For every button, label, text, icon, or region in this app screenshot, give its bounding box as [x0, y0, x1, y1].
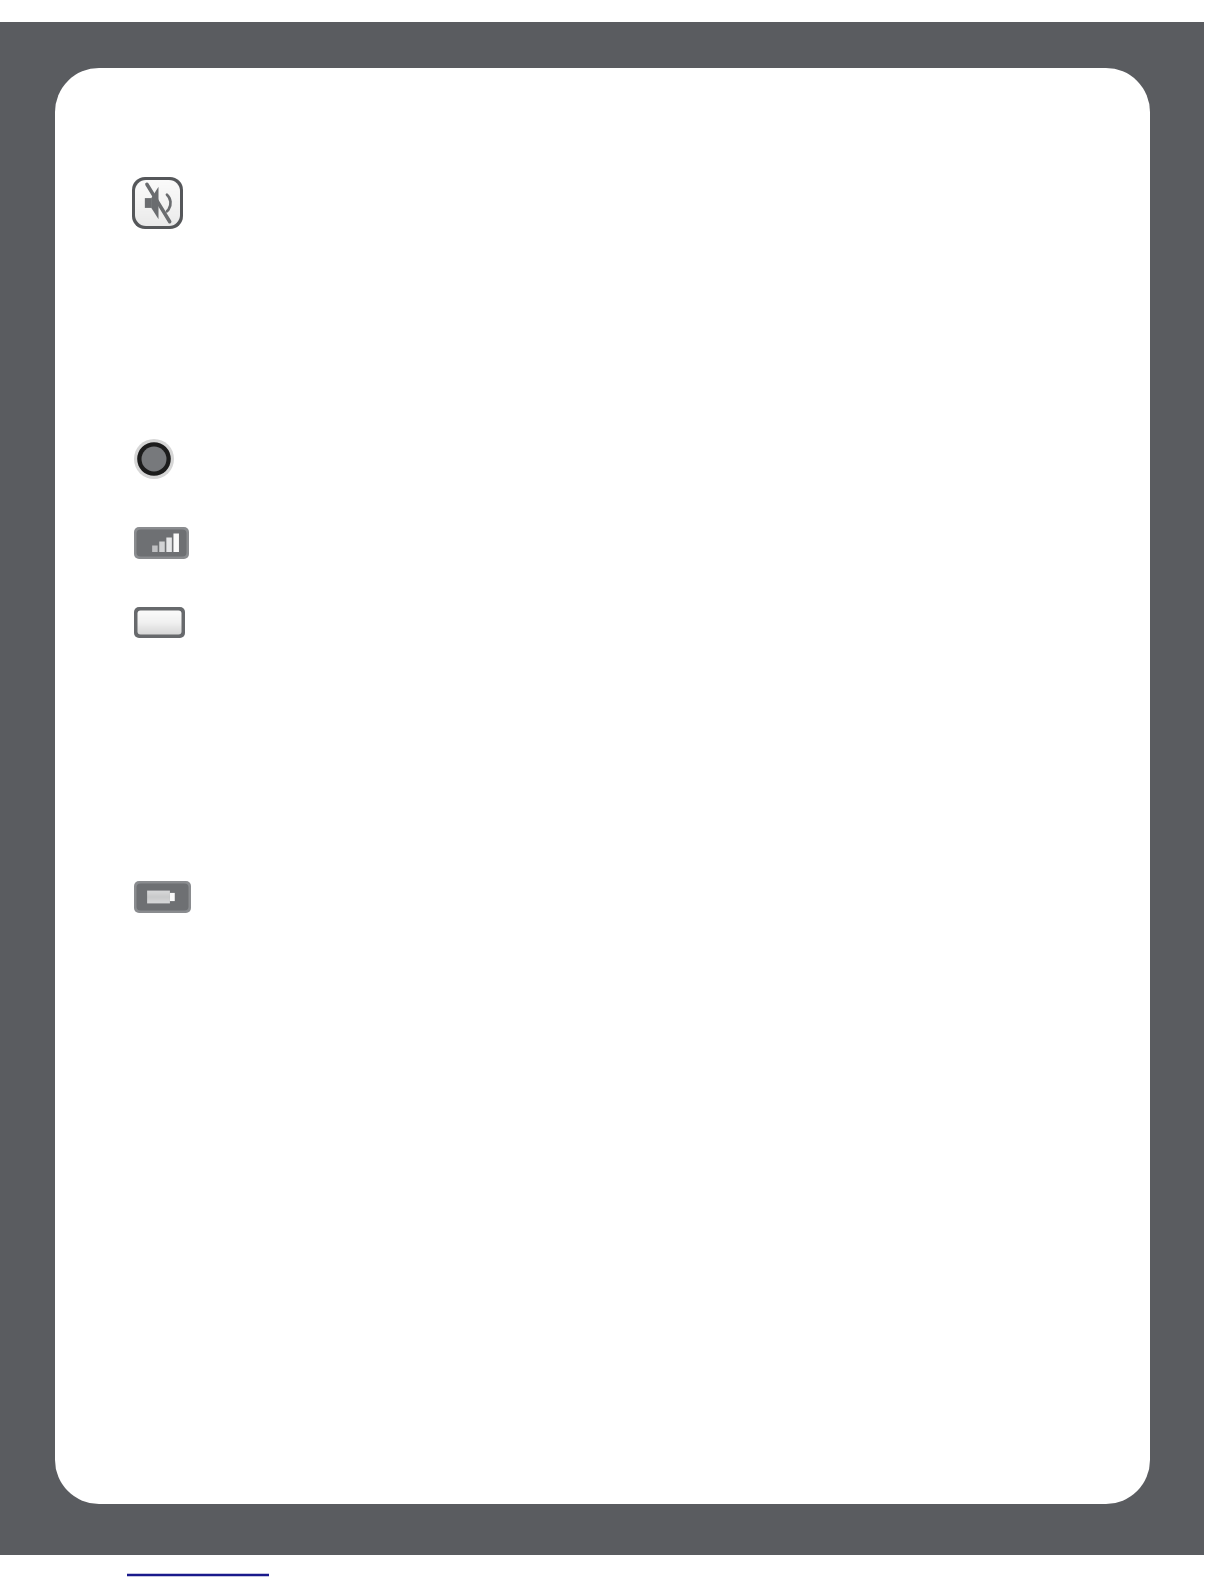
button[interactable]: Signal strength	[134, 527, 189, 559]
button[interactable]: Status indicator	[134, 439, 174, 479]
button[interactable]: Indicator	[134, 607, 185, 638]
button[interactable]: Mute sound	[132, 177, 183, 229]
button[interactable]: Link	[127, 1566, 269, 1580]
button[interactable]: Battery level	[134, 881, 191, 913]
